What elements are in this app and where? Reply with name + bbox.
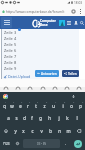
staticText: Computer (40, 19, 56, 23)
button[interactable]: u (49, 100, 58, 112)
staticText: Antworten (41, 72, 57, 76)
button[interactable]: n (55, 124, 64, 137)
staticText: o (70, 103, 73, 109)
staticText: l (76, 115, 78, 121)
button[interactable]: ?123 (0, 137, 13, 150)
staticText: 4 (29, 101, 31, 104)
button[interactable]: b (46, 124, 55, 137)
staticText: w (10, 103, 14, 109)
staticText: Zeile 6 (4, 48, 17, 53)
button[interactable]: c (28, 124, 37, 137)
staticText: y (14, 128, 17, 134)
button[interactable]: d (20, 112, 28, 124)
button[interactable]: p (76, 100, 85, 112)
button[interactable]: j (54, 112, 63, 124)
button[interactable]: v (37, 124, 46, 137)
staticText: Base (40, 23, 48, 27)
staticText: q (3, 103, 6, 109)
staticText: Zeile 3 (4, 30, 17, 35)
staticText: s (15, 115, 18, 121)
button[interactable]: Teilen (62, 70, 79, 77)
staticText: g (39, 115, 42, 121)
staticText: https://www.computerbase.de/forum/t (6, 10, 65, 14)
staticText: n (58, 128, 61, 134)
staticText: h (48, 115, 51, 121)
button[interactable]: e (16, 100, 24, 112)
button[interactable]: Tabs (71, 9, 76, 14)
button[interactable]: y (11, 124, 19, 137)
staticText: Datei-Upload (8, 74, 31, 79)
button[interactable]: l (72, 112, 81, 124)
button[interactable]: z (40, 100, 49, 112)
staticText: t (35, 103, 37, 109)
staticText: 9 (73, 101, 75, 104)
staticText: a (7, 115, 10, 121)
staticText: Zeile 5 (4, 42, 17, 47)
staticText: DE • EN (37, 142, 47, 146)
button[interactable]: r (24, 100, 32, 112)
staticText: r (27, 103, 29, 109)
button[interactable]: a (4, 112, 12, 124)
button[interactable]: Account (72, 17, 79, 28)
staticText: j (58, 115, 60, 121)
staticText: b (49, 128, 52, 134)
staticText: 6 (46, 101, 48, 104)
staticText: 5 (37, 101, 39, 104)
staticText: d (23, 115, 26, 121)
staticText: e (19, 103, 22, 109)
button[interactable]: DE • EN (23, 139, 60, 148)
staticText: Zeile 4 (4, 36, 17, 41)
button[interactable]: Emoji (13, 137, 22, 150)
button[interactable]: i (58, 100, 67, 112)
button[interactable]: Sections (65, 17, 72, 28)
staticText: 0 (82, 101, 84, 104)
button[interactable]: More options (78, 9, 83, 14)
staticText: 7 (55, 101, 57, 104)
button[interactable]: m (64, 124, 73, 137)
staticText: f (31, 115, 33, 121)
button[interactable]: Enter (70, 137, 85, 150)
button[interactable]: Shift (0, 124, 11, 137)
button[interactable]: Backspace (73, 124, 85, 137)
staticText: z (43, 103, 46, 109)
staticText: 1 (5, 101, 7, 104)
button[interactable]: x (19, 124, 28, 137)
button[interactable]: w (8, 100, 16, 112)
button[interactable]: h (45, 112, 54, 124)
button[interactable]: ComputerBase home (33, 17, 56, 29)
staticText: . (65, 141, 67, 146)
staticText: ?123 (3, 142, 10, 146)
button[interactable]: o (67, 100, 76, 112)
staticText: Teilen (68, 72, 77, 76)
staticText: 3 (21, 101, 23, 104)
staticText: c (31, 128, 34, 134)
staticText: Zeile 9 (4, 66, 17, 71)
staticText: v (40, 128, 43, 134)
button[interactable]: k (63, 112, 72, 124)
staticText: m (66, 128, 71, 134)
button[interactable]: Menu (1, 17, 12, 28)
button[interactable]: Banner (59, 20, 65, 26)
staticText: k (66, 115, 69, 121)
button[interactable]: g (36, 112, 45, 124)
staticText: i (62, 103, 64, 109)
staticText: u (52, 103, 55, 109)
staticText: 18:03 (74, 1, 83, 5)
staticText: p (79, 103, 82, 109)
button[interactable]: q (0, 100, 8, 112)
button[interactable]: Google (2, 93, 8, 99)
staticText: 2 (13, 101, 15, 104)
button[interactable]: . (61, 137, 70, 150)
button[interactable]: s (12, 112, 20, 124)
button[interactable]: t (32, 100, 40, 112)
button[interactable]: Voice input (71, 94, 76, 99)
button[interactable]: Antworten (35, 70, 59, 77)
staticText: Zeile 7 (4, 54, 17, 59)
staticText: x (22, 128, 25, 134)
staticText: Zeile 8 (4, 60, 17, 65)
button[interactable]: Datei-Upload (4, 74, 31, 79)
button[interactable]: f (28, 112, 36, 124)
staticText: 8 (64, 101, 66, 104)
button[interactable]: Search (79, 17, 84, 28)
